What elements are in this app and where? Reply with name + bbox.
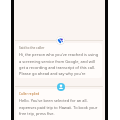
- button[interactable]: Caller replied: [16, 89, 102, 120]
- button[interactable]: Said to the caller: [16, 43, 102, 78]
- button[interactable]: Google Assistant: [56, 36, 65, 45]
- staticText: Hi, the person who you've reached is usi…: [19, 52, 99, 78]
- button[interactable]: Caller: [57, 83, 65, 91]
- staticText: Caller replied: [19, 92, 40, 96]
- staticText: Hello. You've been selected for an all-e…: [19, 98, 99, 116]
- staticText: Said to the caller: [19, 46, 45, 50]
